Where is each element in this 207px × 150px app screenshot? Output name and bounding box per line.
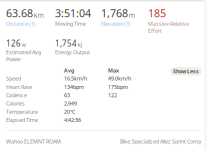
staticText: Elevation (?) [101, 20, 130, 27]
staticText: 20°C [64, 108, 75, 115]
staticText: 3:51:04 [55, 6, 91, 20]
staticText: Temperature [6, 108, 38, 115]
staticText: Wahoo ELEMNT ROAM [6, 138, 61, 145]
staticText: m [129, 11, 135, 20]
staticText: 63 [64, 92, 70, 99]
staticText: Bike: Specialized Allez Sprint Comp [120, 138, 201, 145]
staticText: 49.0km/h [108, 75, 131, 82]
staticText: Calories [6, 100, 25, 107]
staticText: 63.68 [6, 6, 33, 20]
staticText: 175bpm [108, 83, 128, 90]
staticText: Speed [6, 75, 21, 82]
staticText: 2,949 [64, 100, 77, 107]
staticText: 1,768 [101, 6, 128, 20]
staticText: Avg [64, 67, 74, 74]
staticText: Energy Output [55, 49, 90, 56]
staticText: Heart Rate [6, 83, 32, 90]
staticText: Estimated Avg Power [6, 49, 41, 63]
staticText: Max [108, 67, 119, 74]
staticText: 126 [6, 38, 21, 49]
staticText: 185 [148, 6, 166, 20]
staticText: kJ [78, 41, 82, 48]
staticText: Distance (?) [6, 20, 35, 27]
staticText: Elapsed Time [6, 116, 38, 124]
staticText: 16.5km/h [64, 75, 87, 82]
staticText: km [34, 11, 44, 20]
staticText: 4:42:36 [64, 116, 81, 124]
staticText: 122 [108, 92, 117, 99]
staticText: 1,754 [55, 38, 77, 49]
button[interactable]: Show Less [170, 67, 202, 75]
staticText: Massive Relative Effort [148, 20, 189, 34]
staticText: Cadence [6, 92, 27, 99]
staticText: 134bpm [64, 83, 84, 90]
staticText: w [22, 41, 26, 48]
staticText: Show Less [173, 68, 199, 75]
staticText: Moving Time [55, 20, 86, 27]
